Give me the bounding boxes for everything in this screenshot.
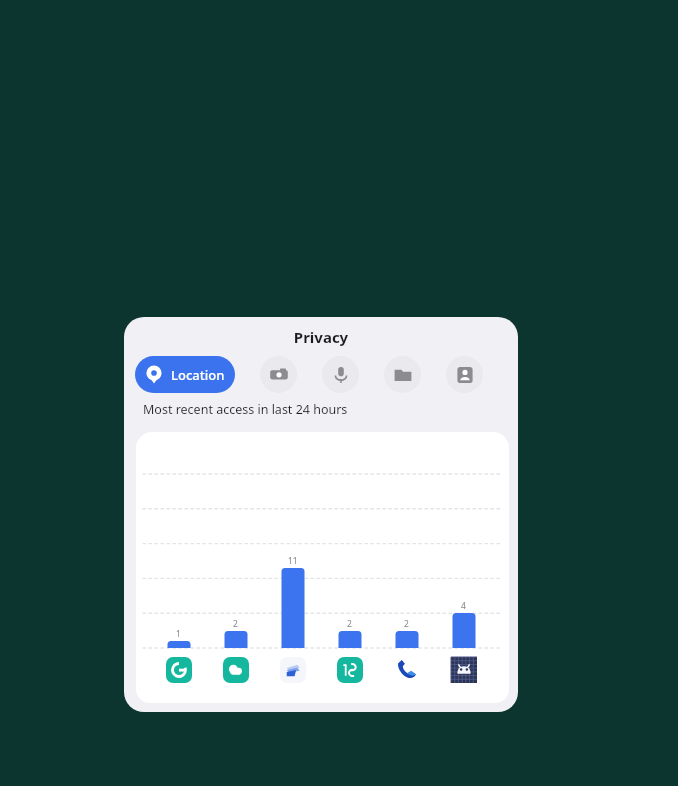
- staticText: 11: [288, 555, 298, 567]
- button[interactable]: Microphone: [322, 356, 359, 393]
- staticText: Privacy: [124, 327, 518, 347]
- button[interactable]: Contacts: [446, 356, 483, 393]
- staticText: 2: [233, 618, 238, 630]
- staticText: 2: [347, 618, 352, 630]
- button[interactable]: 1: [136, 432, 509, 703]
- staticText: 1: [176, 628, 181, 640]
- button[interactable]: Files: [384, 356, 421, 393]
- staticText: 2: [404, 618, 409, 630]
- staticText: Location: [171, 366, 225, 384]
- button[interactable]: Camera: [260, 356, 297, 393]
- staticText: Most recent access in last 24 hours: [143, 401, 348, 418]
- staticText: 4: [461, 600, 466, 612]
- button[interactable]: Location: [135, 356, 235, 393]
